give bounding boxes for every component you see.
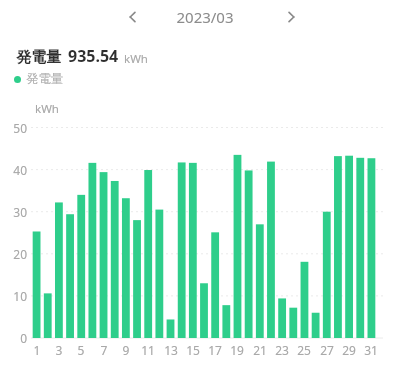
staticText: kWh <box>124 51 148 67</box>
staticText: 20 <box>2 246 27 262</box>
staticText: 27 <box>316 342 338 358</box>
button[interactable]: 発電量 <box>14 71 64 87</box>
staticText: 21 <box>249 342 271 358</box>
staticText: 11 <box>137 342 159 358</box>
staticText: 1 <box>26 342 48 358</box>
staticText: kWh <box>35 101 59 117</box>
staticText: 25 <box>293 342 315 358</box>
staticText: 7 <box>93 342 115 358</box>
staticText: 5 <box>70 342 92 358</box>
staticText: 23 <box>271 342 293 358</box>
staticText: 50 <box>2 120 27 136</box>
staticText: 15 <box>182 342 204 358</box>
staticText: 40 <box>2 162 27 178</box>
staticText: 13 <box>160 342 182 358</box>
staticText: 19 <box>226 342 248 358</box>
staticText: 2023/03 <box>176 7 234 27</box>
staticText: 31 <box>360 342 382 358</box>
button[interactable]: Next month <box>277 3 305 31</box>
staticText: 30 <box>2 204 27 220</box>
staticText: 発電量 <box>26 71 64 87</box>
staticText: 935.54 <box>68 45 119 67</box>
staticText: 29 <box>338 342 360 358</box>
staticText: 3 <box>48 342 70 358</box>
staticText: 17 <box>204 342 226 358</box>
button[interactable]: Previous month <box>119 3 147 31</box>
staticText: 0 <box>2 330 27 346</box>
staticText: 9 <box>115 342 137 358</box>
button[interactable]: 2023/03 <box>158 5 252 29</box>
staticText: 発電量 <box>16 48 61 67</box>
staticText: 10 <box>2 288 27 304</box>
